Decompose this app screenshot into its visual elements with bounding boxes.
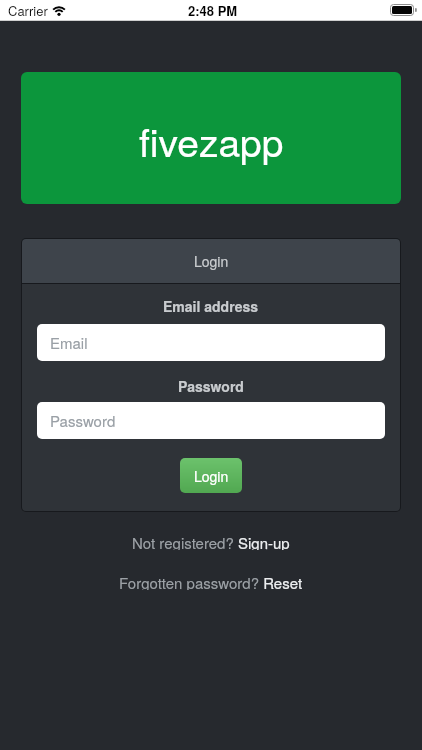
button[interactable]: fivezapp	[21, 72, 401, 204]
staticText: Forgotten password? Reset	[119, 572, 303, 590]
staticText: fivezapp	[139, 112, 284, 168]
button[interactable]: Forgotten password? Reset	[0, 572, 422, 590]
staticText: Carrier	[8, 1, 48, 20]
staticText: Login	[194, 466, 229, 486]
button[interactable]: Login	[180, 458, 242, 493]
button[interactable]: Not registered? Sign-up	[0, 532, 422, 550]
staticText: Login	[194, 251, 229, 271]
button[interactable]: Email	[37, 324, 385, 361]
staticText: Not registered? Sign-up	[132, 532, 290, 550]
staticText: Email	[50, 332, 88, 353]
button[interactable]: Password	[37, 402, 385, 439]
staticText: 2:48 PM	[188, 1, 238, 20]
staticText: Password	[178, 376, 244, 392]
staticText: Email address	[163, 296, 259, 312]
staticText: Password	[50, 410, 116, 431]
